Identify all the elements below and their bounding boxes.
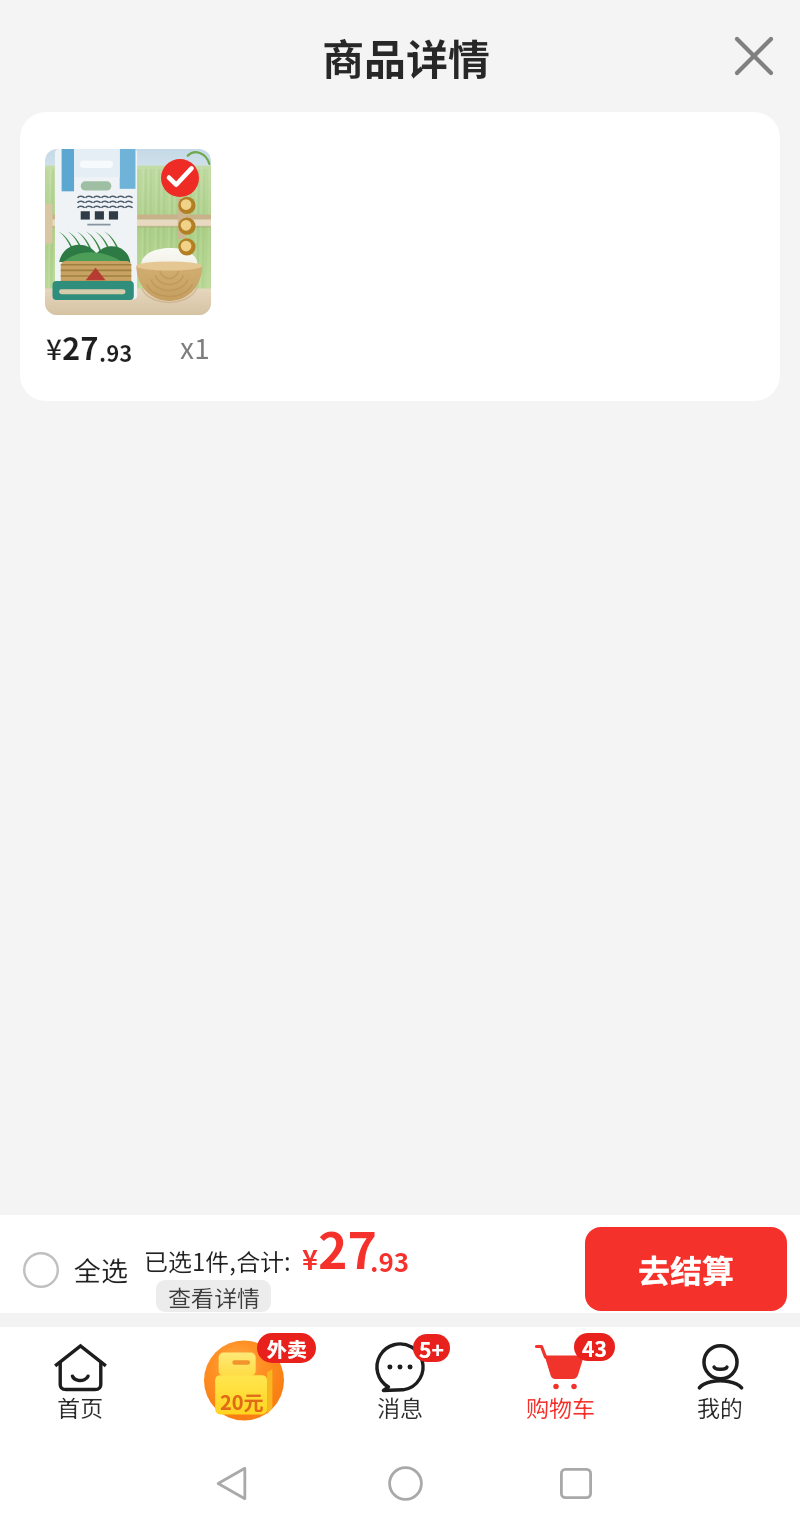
staticText: .93 (370, 1242, 410, 1280)
staticText: 27 (62, 324, 99, 369)
button[interactable]: 外卖 takeout 20 yuan coupon (160, 1327, 320, 1430)
staticText: 5+ (419, 1334, 444, 1362)
staticText: 去结算 (638, 1246, 735, 1292)
button[interactable]: Recents (548, 1455, 604, 1511)
button[interactable]: 我的 (640, 1327, 800, 1423)
staticText: 购物车 (526, 1390, 595, 1423)
staticText: 43 (582, 1333, 607, 1361)
staticText: 20元 (220, 1387, 264, 1416)
staticText: 已选1件,合计: (144, 1243, 291, 1278)
button[interactable]: 全选 (23, 1250, 128, 1289)
button[interactable]: Close (722, 24, 786, 88)
button[interactable]: Home (377, 1455, 433, 1511)
staticText: 首页 (57, 1390, 103, 1423)
button[interactable]: Back (203, 1455, 259, 1511)
staticText: 查看详情 (168, 1280, 260, 1312)
staticText: 消息 (377, 1390, 423, 1423)
staticText: 我的 (697, 1390, 743, 1423)
button[interactable]: 查看详情 (156, 1280, 271, 1312)
staticText: 27 (318, 1211, 377, 1283)
staticText: 商品详情 (322, 26, 491, 87)
staticText: .93 (99, 336, 133, 368)
button[interactable]: 首页 (0, 1327, 160, 1423)
staticText: ¥ (46, 328, 62, 369)
staticText: 外卖 (267, 1334, 307, 1363)
button[interactable]: 43 (480, 1327, 640, 1423)
staticText: 全选 (74, 1250, 128, 1289)
staticText: ¥ (302, 1239, 318, 1278)
button[interactable]: 去结算 (585, 1227, 787, 1311)
button[interactable]: 5+ (320, 1327, 480, 1423)
staticText: x1 (180, 327, 210, 368)
